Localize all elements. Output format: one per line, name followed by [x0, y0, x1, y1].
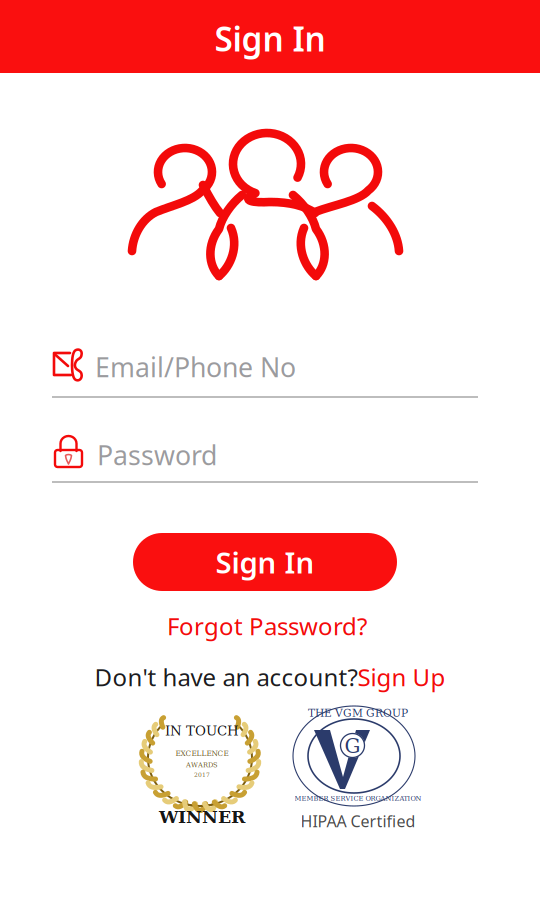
button[interactable]: Forgot Password? [147, 609, 387, 643]
staticText: Forgot Password? [167, 610, 367, 642]
staticText: WINNER [159, 807, 245, 827]
staticText: AWARDS [186, 761, 218, 769]
staticText: Don't have an account? [94, 661, 357, 693]
staticText: Email/Phone No [95, 349, 296, 385]
staticText: 2017 [194, 771, 210, 778]
staticText: IN TOUCH [165, 723, 239, 739]
staticText: Sign In [214, 16, 325, 61]
button[interactable]: Sign Up [357, 661, 445, 693]
staticText: MEMBER SERVICE ORGANIZATION [294, 795, 421, 802]
staticText: THE VGM GROUP [308, 707, 408, 719]
staticText: G [344, 734, 360, 758]
button[interactable]: Sign In [133, 533, 397, 591]
staticText: Sign Up [357, 661, 445, 693]
staticText: HIPAA Certified [300, 810, 415, 832]
staticText: EXCELLENCE [175, 749, 228, 758]
staticText: Password [97, 437, 217, 473]
staticText: Sign In [215, 542, 314, 581]
